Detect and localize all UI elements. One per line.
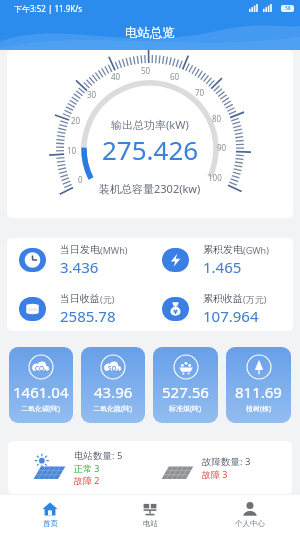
staticText: (元) — [100, 293, 115, 305]
button[interactable]: 当日收益 — [7, 292, 150, 326]
staticText: 装机总容量2302(kw) — [99, 181, 201, 196]
staticText: 60 — [170, 71, 180, 82]
staticText: 输出总功率(kW) — [111, 117, 189, 132]
button[interactable]: 811.69 — [226, 347, 291, 423]
staticText: 811.69 — [235, 382, 282, 402]
button[interactable]: 故障数量: 3 — [150, 441, 292, 494]
staticText: 50 — [141, 65, 151, 76]
button[interactable]: 当日发电 — [7, 243, 150, 277]
staticText: 527.56 — [162, 382, 209, 402]
staticText: 40 — [111, 71, 121, 82]
staticText: 100 — [208, 172, 222, 183]
staticText: (MWh) — [100, 244, 128, 256]
staticText: 当日发电 — [60, 243, 100, 256]
staticText: 30 — [87, 89, 97, 100]
staticText: 80 — [212, 113, 222, 124]
staticText: SO₂ — [108, 364, 119, 373]
staticText: 累积发电 — [203, 243, 243, 256]
staticText: 故障 3 — [202, 468, 228, 480]
button[interactable]: 电站数量: 5 — [8, 441, 150, 494]
staticText: 1.465 — [203, 257, 242, 277]
staticText: 电站 — [143, 519, 158, 528]
staticText: 2585.78 — [60, 306, 116, 326]
staticText: 故障数量: 3 — [202, 455, 251, 468]
staticText: 标准煤(吨) — [169, 404, 202, 414]
button[interactable]: CO₂ — [9, 347, 73, 423]
staticText: 3.436 — [60, 257, 99, 277]
staticText: 90 — [217, 142, 227, 153]
staticText: 植树(棵) — [246, 404, 272, 414]
staticText: 首页 — [43, 519, 58, 528]
button[interactable]: 个人中心 — [200, 495, 300, 533]
button[interactable]: 累积收益 — [150, 292, 293, 326]
staticText: 个人中心 — [235, 519, 265, 528]
staticText: CO₂ — [35, 364, 47, 373]
staticText: 20 — [71, 115, 81, 126]
button[interactable]: 首页 — [0, 495, 100, 533]
button[interactable]: 527.56 — [153, 347, 218, 423]
staticText: 43.96 — [94, 382, 133, 402]
staticText: 1461.04 — [13, 382, 69, 402]
staticText: 275.426 — [102, 132, 199, 167]
staticText: 二氧化碳(吨) — [21, 404, 61, 414]
staticText: (GWh) — [243, 244, 269, 256]
button[interactable]: SO₂ — [81, 347, 145, 423]
staticText: 当日收益 — [60, 292, 100, 305]
staticText: 正常 3 — [74, 462, 100, 474]
staticText: 累积收益 — [203, 292, 243, 305]
staticText: 下午3:52 | 11.9K/s — [14, 3, 83, 14]
staticText: 10 — [67, 145, 77, 156]
staticText: 故障 2 — [74, 474, 100, 486]
staticText: 0 — [78, 174, 83, 185]
staticText: 电站总览 — [125, 25, 175, 41]
staticText: 二氧化硫(吨) — [93, 404, 133, 414]
staticText: 70 — [195, 87, 205, 98]
button[interactable]: 累积发电 — [150, 243, 293, 277]
staticText: 电站数量: 5 — [74, 449, 123, 462]
staticText: 107.964 — [203, 306, 259, 326]
staticText: 58 — [285, 5, 291, 12]
staticText: (万元) — [243, 293, 267, 305]
button[interactable]: 电站 — [100, 495, 200, 533]
